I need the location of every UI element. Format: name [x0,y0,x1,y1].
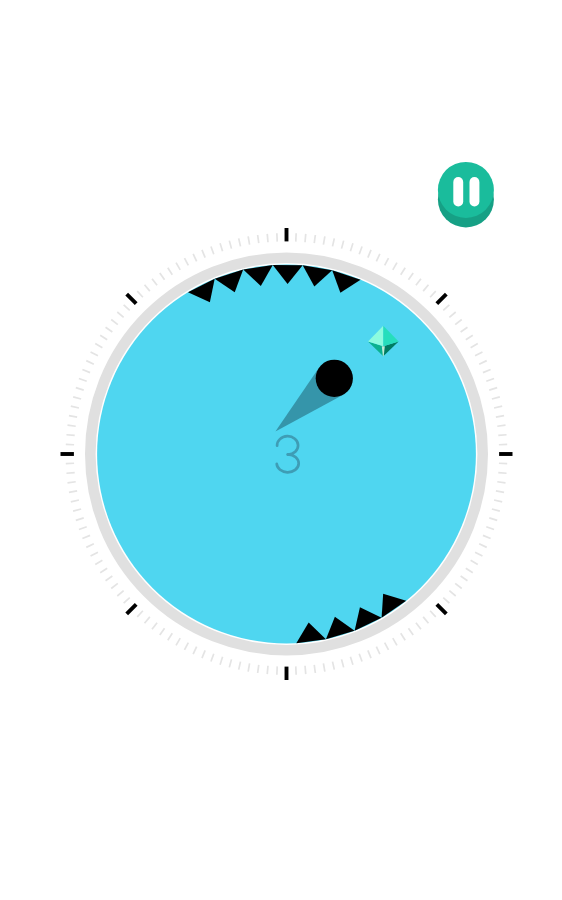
button[interactable]: Game board [0,0,562,900]
button[interactable]: Pause [438,162,494,228]
